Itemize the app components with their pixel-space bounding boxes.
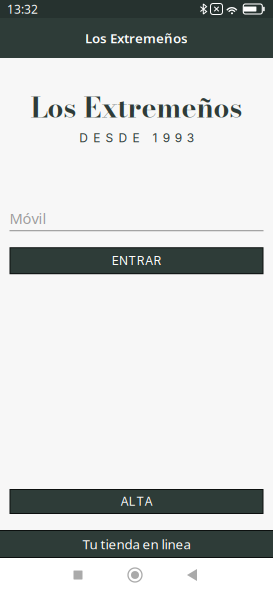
staticText: 3 [187, 131, 194, 145]
button[interactable]: Back [169, 558, 215, 592]
staticText: Los Extremeños [85, 29, 188, 47]
staticText: R [153, 253, 161, 268]
staticText: S [105, 131, 113, 145]
staticText: A [145, 253, 153, 268]
staticText: T [136, 494, 144, 509]
staticText: 13:32 [7, 1, 38, 17]
staticText: Móvil [9, 208, 46, 228]
staticText: E [93, 131, 100, 145]
staticText: N [119, 253, 128, 268]
staticText: E [132, 131, 139, 145]
button[interactable]: Tu tienda en linea [0, 530, 273, 558]
staticText: 1 [153, 131, 158, 145]
staticText: A [144, 494, 152, 509]
staticText: D [118, 131, 127, 145]
button[interactable]: Home [112, 558, 158, 592]
staticText: 9 [163, 131, 170, 145]
staticText: T [128, 253, 136, 268]
button[interactable]: A [9, 489, 263, 514]
button[interactable]: E [9, 247, 263, 274]
staticText: R [137, 253, 145, 268]
staticText: D [79, 131, 88, 145]
staticText: A [120, 494, 128, 509]
button[interactable]: Recent apps [55, 558, 101, 592]
staticText: E [112, 253, 119, 268]
staticText: L [129, 494, 136, 509]
staticText: 9 [175, 131, 182, 145]
staticText: Tu tienda en linea [82, 535, 190, 553]
staticText: Los Extremeños [30, 86, 242, 129]
